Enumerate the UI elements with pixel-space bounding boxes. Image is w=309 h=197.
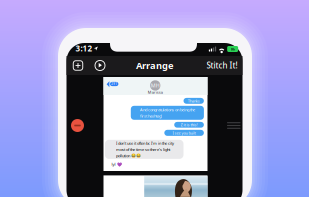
- staticText: I see you built: [173, 130, 196, 135]
- staticText: Stitch It!: [206, 60, 237, 71]
- staticText: Thanks: [188, 98, 200, 103]
- button[interactable]: Add: [73, 61, 83, 70]
- staticText: MH: [151, 82, 160, 89]
- staticText: Arrange: [136, 59, 174, 72]
- button[interactable]: Stop recording: [71, 119, 84, 132]
- staticText: pollution 😂😂: [116, 153, 141, 158]
- button[interactable]: Play: [95, 60, 105, 70]
- button[interactable]: Stitch It!: [206, 60, 237, 71]
- button[interactable]: Back: [106, 81, 118, 87]
- staticText: 3:12: [75, 43, 92, 54]
- staticText: first hashtag!: [140, 113, 162, 119]
- staticText: 86: [231, 46, 235, 52]
- staticText: lyl 💜: [111, 162, 121, 167]
- staticText: most of the time so there's light: [116, 147, 170, 152]
- staticText: Marissa: [148, 89, 163, 95]
- staticText: 291: [111, 82, 117, 86]
- staticText: I don't use it often bc I'm in the city: [116, 141, 174, 146]
- staticText: Z it is this!: [180, 122, 197, 127]
- staticText: And congratulations on being the: [140, 107, 195, 112]
